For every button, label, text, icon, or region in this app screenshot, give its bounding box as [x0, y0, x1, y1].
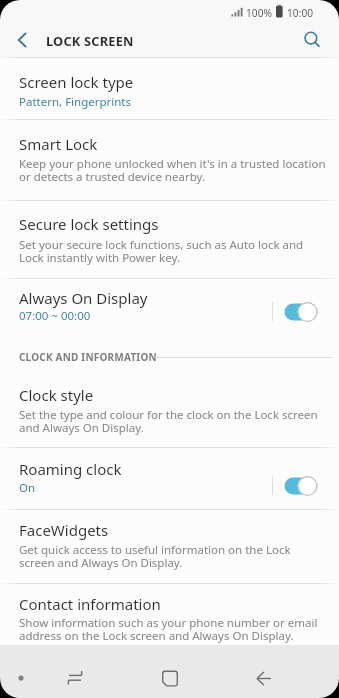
- button[interactable]: [6, 28, 34, 56]
- staticText: Screen lock type: [19, 72, 134, 92]
- button[interactable]: FaceWidgets: [0, 510, 339, 583]
- staticText: Get quick access to useful information o…: [19, 542, 291, 571]
- button[interactable]: [59, 662, 91, 694]
- staticText: 07:00 ~ 00:00: [19, 308, 91, 324]
- staticText: Set your secure lock functions, such as …: [19, 237, 304, 266]
- staticText: 10:00: [287, 6, 314, 20]
- staticText: Clock style: [19, 385, 94, 405]
- button[interactable]: Smart Lock: [0, 120, 339, 200]
- button[interactable]: [298, 26, 326, 54]
- staticText: Secure lock settings: [19, 214, 159, 234]
- button[interactable]: Secure lock settings: [0, 201, 339, 278]
- staticText: FaceWidgets: [19, 520, 109, 540]
- button[interactable]: Always On Display: [0, 279, 339, 341]
- button[interactable]: [154, 662, 186, 694]
- button[interactable]: [248, 662, 280, 694]
- staticText: Show information such as your phone numb…: [19, 615, 318, 644]
- button[interactable]: Roaming clock: [0, 448, 339, 509]
- staticText: LOCK SCREEN: [46, 32, 134, 49]
- staticText: Always On Display: [19, 288, 148, 308]
- staticText: Keep your phone unlocked when it's in a …: [19, 156, 326, 185]
- button[interactable]: Contact information: [0, 584, 339, 645]
- staticText: 100%: [246, 6, 272, 20]
- staticText: Contact information: [19, 594, 161, 614]
- button[interactable]: Screen lock type: [0, 58, 339, 119]
- button[interactable]: Clock style: [0, 370, 339, 447]
- staticText: Set the type and colour for the clock on…: [19, 407, 318, 436]
- staticText: Pattern, Fingerprints: [19, 94, 132, 110]
- staticText: Roaming clock: [19, 459, 122, 479]
- staticText: Smart Lock: [19, 134, 98, 154]
- staticText: On: [19, 480, 36, 496]
- staticText: CLOCK AND INFORMATION: [19, 350, 157, 364]
